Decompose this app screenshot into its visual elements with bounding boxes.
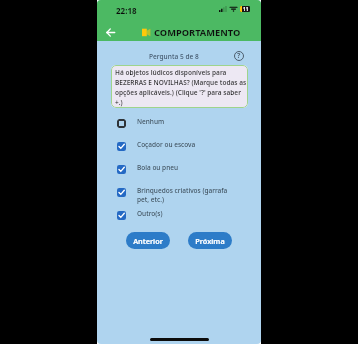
button[interactable]: Outro(s) — [97, 208, 261, 231]
staticText: Outro(s) — [137, 209, 241, 218]
button[interactable]: Bola ou pneu — [97, 162, 261, 185]
staticText: 11 — [243, 6, 249, 12]
staticText: Pergunta 5 de 8 — [149, 52, 199, 61]
button[interactable]: Próxima — [188, 232, 232, 249]
staticText: Há objetos lúdicos disponíveis para BEZE… — [115, 68, 247, 107]
button[interactable]: Nenhum — [97, 116, 261, 139]
staticText: Nenhum — [137, 117, 241, 126]
button[interactable]: Help — [233, 50, 245, 62]
button[interactable]: Coçador ou escova — [97, 139, 261, 162]
staticText: Coçador ou escova — [137, 140, 241, 149]
staticText: 22:18 — [116, 5, 137, 16]
staticText: Bola ou pneu — [137, 163, 241, 172]
staticText: Próxima — [195, 236, 225, 246]
button[interactable]: Brinquedos criativos (garrafa pet, etc.) — [97, 185, 261, 208]
staticText: COMPORTAMENTO — [154, 26, 241, 39]
staticText: Brinquedos criativos (garrafa pet, etc.) — [137, 186, 241, 204]
staticText: Anterior — [133, 236, 163, 246]
button[interactable]: Back — [102, 24, 119, 41]
staticText: ? — [237, 51, 241, 61]
button[interactable]: Anterior — [126, 232, 170, 249]
